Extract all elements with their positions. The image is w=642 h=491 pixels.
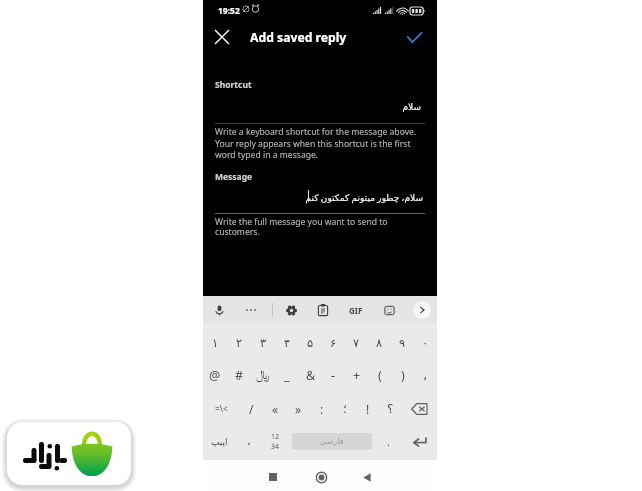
staticText: ۳	[260, 336, 267, 349]
button[interactable]: @	[203, 359, 227, 392]
button[interactable]: Close	[209, 24, 235, 50]
staticText: @	[209, 367, 221, 384]
button[interactable]: #	[227, 359, 251, 392]
staticText: +	[353, 367, 361, 384]
button[interactable]: More options	[240, 299, 262, 321]
button[interactable]: :	[310, 392, 333, 425]
button[interactable]: «	[263, 392, 287, 425]
staticText: Shortcut	[215, 79, 252, 91]
staticText: ۵	[307, 336, 314, 349]
button[interactable]: Back	[359, 469, 375, 485]
button[interactable]: ۸	[368, 326, 391, 359]
button[interactable]: !	[356, 392, 379, 425]
button[interactable]: Clipboard	[312, 299, 334, 321]
staticText: 34	[271, 442, 280, 452]
staticText: &	[306, 367, 316, 384]
staticText: ۸	[376, 336, 383, 349]
button[interactable]: Settings	[280, 299, 302, 321]
staticText: ۶	[330, 336, 337, 349]
staticText: ؟	[387, 402, 394, 416]
staticText: ۲	[236, 336, 243, 349]
button[interactable]: Save	[401, 24, 427, 50]
staticText: Write the full message you want to send …	[215, 216, 388, 238]
staticText: )	[401, 367, 405, 384]
button[interactable]: +	[345, 359, 368, 392]
staticText: ۱	[212, 336, 219, 349]
staticText: «	[272, 401, 279, 417]
button[interactable]: ۱	[203, 326, 227, 359]
button[interactable]: /	[239, 392, 263, 425]
staticText: !	[366, 401, 370, 417]
button[interactable]: ۳	[251, 326, 275, 359]
button[interactable]: )	[391, 359, 414, 392]
staticText: 19:52	[218, 5, 240, 17]
button[interactable]: ۴	[275, 326, 299, 359]
button[interactable]: -	[322, 359, 345, 392]
staticText: Write a keyboard shortcut for the messag…	[215, 126, 417, 160]
button[interactable]: Backspace	[402, 392, 437, 425]
button[interactable]: Voice input	[208, 299, 230, 321]
staticText: GIF	[349, 305, 363, 316]
button[interactable]: Recent apps	[265, 469, 281, 485]
button[interactable]: ،	[235, 425, 262, 458]
button[interactable]: ،	[414, 359, 437, 392]
staticText: #	[235, 367, 244, 384]
staticText: سلام، چطور میتونم کمکتون کنم	[203, 191, 423, 203]
button[interactable]: ﷼	[251, 359, 275, 392]
button[interactable]: ؛	[333, 392, 356, 425]
button[interactable]: ۵	[299, 326, 322, 359]
staticText: اپبپ	[211, 437, 228, 447]
button[interactable]: ؟	[379, 392, 402, 425]
button[interactable]: ۷	[345, 326, 368, 359]
staticText: /	[249, 401, 254, 417]
button[interactable]: ۲	[227, 326, 251, 359]
staticText: سلام	[203, 102, 421, 112]
staticText: ،	[247, 435, 251, 448]
button[interactable]: ۹	[391, 326, 414, 359]
staticText: (	[378, 367, 382, 384]
staticText: ۷	[353, 336, 360, 349]
button[interactable]: (	[368, 359, 391, 392]
staticText: ﷼	[256, 369, 270, 382]
staticText: فارسی	[320, 437, 344, 446]
button[interactable]: Enter	[402, 425, 437, 458]
staticText: -	[331, 367, 336, 384]
staticText: ۹	[399, 336, 406, 349]
staticText: ،	[423, 368, 428, 383]
staticText: .	[387, 434, 390, 449]
staticText: Add saved reply	[250, 29, 347, 46]
button[interactable]: .	[375, 425, 402, 458]
button[interactable]: GIF	[345, 299, 367, 321]
staticText: =\<	[215, 403, 228, 415]
button[interactable]: &	[299, 359, 322, 392]
button[interactable]: فارسی	[292, 433, 372, 450]
staticText: »	[295, 401, 302, 417]
button[interactable]: ۶	[322, 326, 345, 359]
staticText: Message	[215, 171, 253, 183]
button[interactable]: 12	[262, 425, 289, 458]
button[interactable]: ۰	[414, 326, 437, 359]
staticText: :	[320, 401, 324, 417]
staticText: ؛	[343, 402, 347, 416]
staticText: _	[284, 367, 290, 384]
button[interactable]: =\<	[203, 392, 239, 425]
staticText: 12	[271, 432, 280, 442]
staticText: ۰	[422, 336, 429, 349]
button[interactable]: _	[275, 359, 299, 392]
button[interactable]: Bazaar	[7, 422, 131, 485]
staticText: ۴	[284, 336, 291, 349]
button[interactable]: Expand toolbar	[413, 301, 431, 319]
button[interactable]: اپبپ	[203, 425, 235, 458]
button[interactable]: Stickers	[378, 299, 400, 321]
button[interactable]: Home	[311, 467, 331, 487]
button[interactable]: »	[287, 392, 310, 425]
